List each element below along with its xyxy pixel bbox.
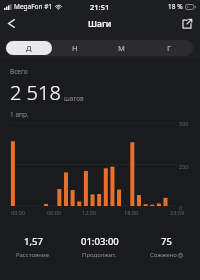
staticText: Г bbox=[167, 43, 171, 53]
staticText: 1,57 bbox=[24, 235, 43, 248]
staticText: 01:03:00 bbox=[81, 235, 119, 248]
staticText: 21:51 bbox=[90, 2, 110, 12]
button[interactable]: Н bbox=[52, 41, 98, 55]
button[interactable]: Г bbox=[145, 41, 192, 55]
staticText: 00:00 bbox=[11, 209, 26, 216]
staticText: Шаги bbox=[88, 18, 112, 30]
staticText: 18:00 bbox=[124, 209, 139, 216]
staticText: MegaFon #1 bbox=[14, 2, 53, 11]
staticText: 500 bbox=[179, 120, 189, 127]
staticText: шагов bbox=[64, 94, 84, 103]
staticText: 12:00 bbox=[82, 209, 97, 216]
button[interactable]: Д bbox=[6, 41, 52, 55]
staticText: 1 апр. bbox=[10, 110, 29, 118]
staticText: 23:59 bbox=[170, 209, 185, 216]
staticText: Д bbox=[26, 43, 32, 53]
staticText: Н bbox=[72, 43, 78, 53]
button[interactable]: М bbox=[98, 41, 145, 55]
staticText: Расстояние bbox=[16, 251, 50, 259]
button[interactable]: Share bbox=[177, 14, 196, 33]
staticText: М bbox=[118, 43, 125, 53]
staticText: Сожжено bbox=[150, 251, 177, 259]
staticText: 2 518 bbox=[10, 79, 61, 106]
staticText: 250 bbox=[179, 163, 189, 170]
button[interactable]: 1,57 bbox=[0, 234, 66, 260]
staticText: 18 % bbox=[168, 2, 183, 11]
staticText: 06:00 bbox=[47, 209, 62, 216]
button[interactable]: 75 bbox=[133, 234, 200, 260]
staticText: Продолжит. bbox=[82, 251, 117, 259]
staticText: 75 bbox=[161, 235, 172, 248]
button[interactable]: Back bbox=[0, 14, 23, 33]
button[interactable]: 01:03:00 bbox=[66, 234, 133, 260]
staticText: 0 bbox=[179, 204, 183, 211]
staticText: Всего bbox=[10, 67, 28, 76]
